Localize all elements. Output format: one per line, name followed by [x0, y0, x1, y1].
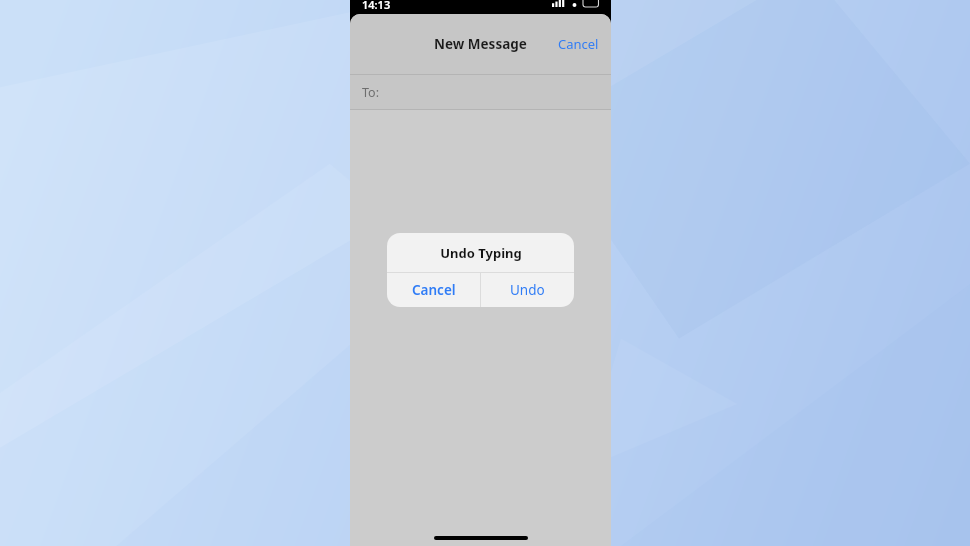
button[interactable]: Cancel [552, 29, 605, 59]
staticText: Undo [510, 281, 545, 299]
staticText: Cancel [412, 281, 456, 299]
staticText: To: [362, 84, 379, 101]
staticText: Cancel [558, 35, 599, 53]
staticText: New Message [434, 35, 527, 53]
staticText: 14:13 [362, 0, 391, 11]
other: Home indicator [434, 536, 528, 540]
button[interactable]: Undo [481, 273, 574, 307]
button[interactable]: Cancel [387, 273, 480, 307]
staticText: Undo Typing [440, 244, 522, 262]
button[interactable]: To: [350, 75, 611, 109]
